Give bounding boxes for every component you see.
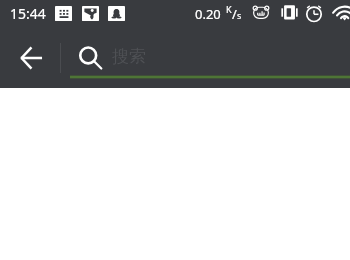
staticText: 搜索 — [112, 46, 146, 67]
staticText: 15:44 — [10, 4, 46, 23]
button[interactable]: Back — [13, 40, 48, 75]
button[interactable]: 搜索 — [70, 38, 350, 76]
staticText: K — [226, 3, 232, 15]
staticText: 0.20 — [195, 5, 221, 23]
staticText: / — [232, 5, 237, 23]
staticText: s — [237, 9, 242, 21]
